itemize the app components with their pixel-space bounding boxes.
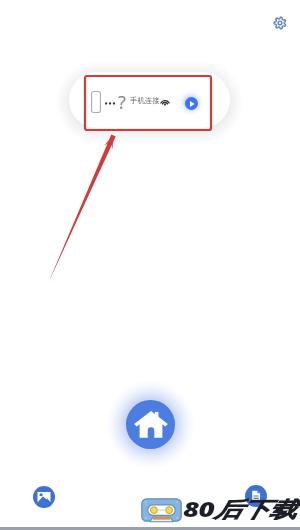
button[interactable]: Home [126,400,175,449]
button[interactable]: Document [245,485,267,507]
button[interactable] [69,72,230,128]
button[interactable]: Play [185,97,198,110]
staticText: 手机连接 [130,96,160,105]
button[interactable]: Settings [270,13,290,33]
staticText: 80后下载 [183,495,296,523]
button[interactable]: Gallery [33,486,55,508]
staticText: ? [118,90,126,112]
